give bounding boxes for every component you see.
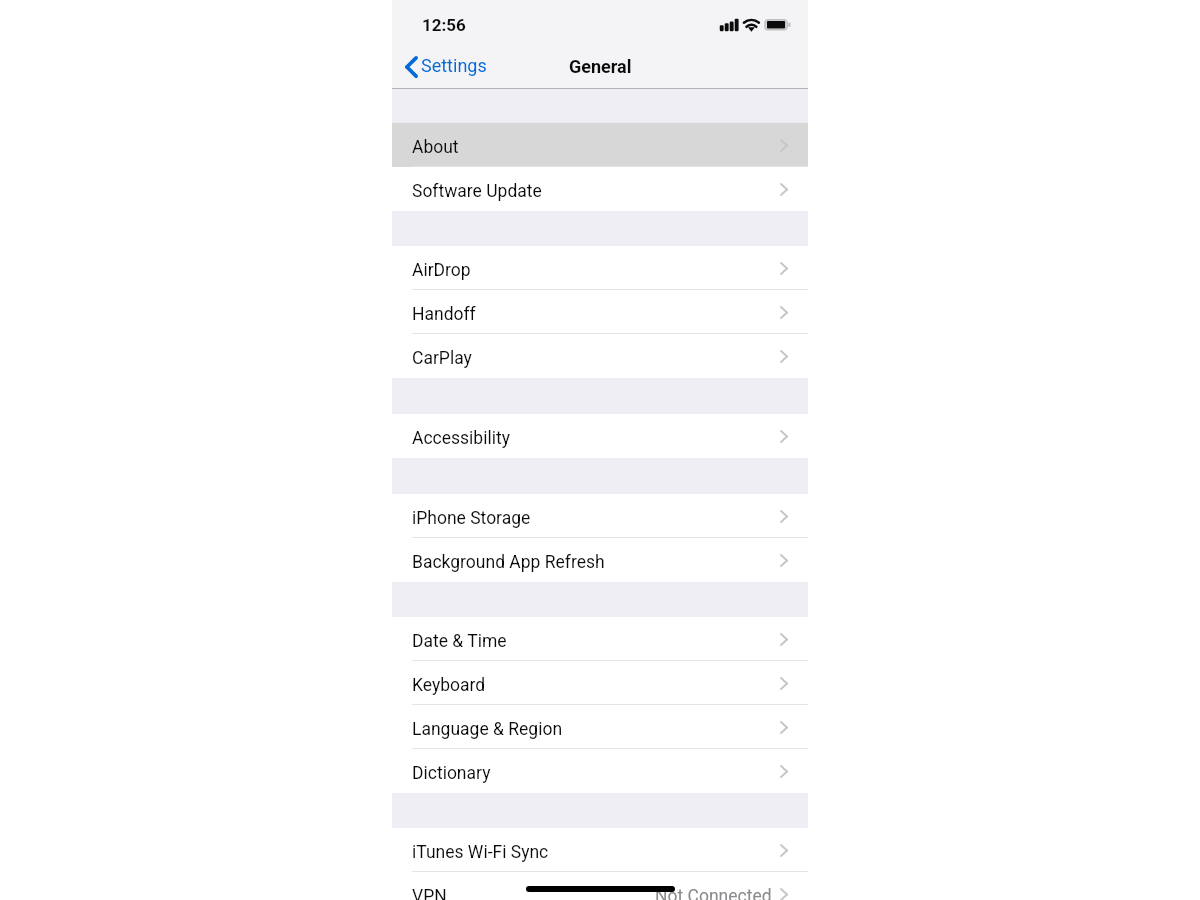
- button[interactable]: About: [392, 123, 808, 167]
- button[interactable]: Dictionary: [392, 749, 808, 793]
- staticText: Dictionary: [412, 763, 491, 784]
- button[interactable]: Handoff: [392, 290, 808, 334]
- staticText: iPhone Storage: [412, 508, 531, 529]
- button[interactable]: AirDrop: [392, 246, 808, 290]
- staticText: Accessibility: [412, 428, 510, 449]
- staticText: Settings: [421, 55, 487, 76]
- staticText: General: [569, 56, 632, 77]
- button[interactable]: Language & Region: [392, 705, 808, 749]
- button[interactable]: Keyboard: [392, 661, 808, 705]
- other: Cellular signal, Wi-Fi and battery statu…: [392, 0, 808, 44]
- button[interactable]: Background App Refresh: [392, 538, 808, 582]
- staticText: Date & Time: [412, 631, 507, 652]
- staticText: iTunes Wi-Fi Sync: [412, 842, 549, 863]
- staticText: VPN: [412, 886, 447, 900]
- button[interactable]: CarPlay: [392, 334, 808, 378]
- staticText: Handoff: [412, 304, 476, 325]
- staticText: Not Connected: [655, 886, 772, 900]
- staticText: 12:56: [422, 15, 466, 35]
- staticText: Software Update: [412, 181, 542, 202]
- staticText: About: [412, 137, 459, 158]
- button[interactable]: Back to Settings: [403, 51, 489, 81]
- button[interactable]: iTunes Wi-Fi Sync: [392, 828, 808, 872]
- button[interactable]: Date & Time: [392, 617, 808, 661]
- button[interactable]: VPN: [392, 872, 808, 900]
- staticText: Keyboard: [412, 675, 486, 696]
- button[interactable]: iPhone Storage: [392, 494, 808, 538]
- button[interactable]: Accessibility: [392, 414, 808, 458]
- staticText: Background App Refresh: [412, 552, 605, 573]
- staticText: Language & Region: [412, 719, 563, 740]
- staticText: CarPlay: [412, 348, 472, 369]
- staticText: AirDrop: [412, 260, 471, 281]
- button[interactable]: Software Update: [392, 167, 808, 211]
